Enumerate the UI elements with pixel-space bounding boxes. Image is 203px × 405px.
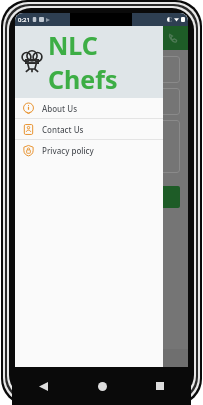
- staticText: Privacy policy: [42, 145, 94, 156]
- staticText: NLC Chefs: [48, 28, 163, 96]
- staticText: 0:21: [18, 16, 30, 24]
- button[interactable]: Back: [154, 374, 168, 388]
- button[interactable]: Call: [166, 31, 180, 45]
- button[interactable]: Recents: [151, 377, 169, 395]
- button[interactable]: Contact Us: [15, 119, 163, 139]
- button[interactable]: About Us: [15, 98, 163, 118]
- staticText: Contact Us: [42, 124, 84, 135]
- button[interactable]: Privacy policy: [15, 140, 163, 160]
- button[interactable]: Home: [95, 374, 109, 388]
- button[interactable]: Menu: [35, 374, 49, 388]
- button[interactable]: [25, 186, 180, 208]
- staticText: About Us: [42, 103, 78, 114]
- button[interactable]: Home: [93, 377, 111, 395]
- button[interactable]: Back: [34, 377, 52, 395]
